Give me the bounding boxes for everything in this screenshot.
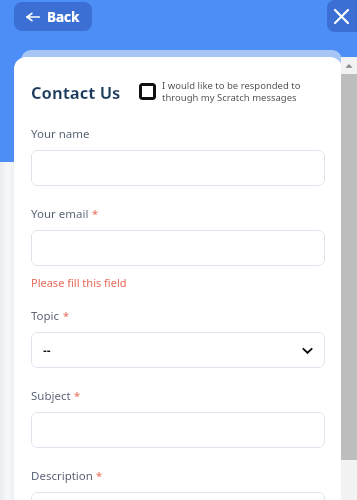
- button[interactable]: [31, 492, 325, 500]
- staticText: *: [63, 308, 70, 323]
- button[interactable]: Respond via Scratch messages: [139, 79, 301, 104]
- staticText: Please fill this field: [31, 275, 127, 290]
- staticText: I would like to be responded to through …: [162, 79, 301, 104]
- staticText: *: [92, 206, 99, 221]
- button[interactable]: Close: [327, 0, 357, 32]
- button[interactable]: [31, 230, 325, 266]
- other: Respond via Scratch messages: [139, 83, 156, 100]
- staticText: Your name: [31, 126, 90, 142]
- staticText: Subject: [31, 388, 71, 404]
- staticText: *: [74, 388, 81, 403]
- staticText: --: [43, 342, 51, 358]
- staticText: Contact Us: [31, 81, 121, 103]
- staticText: *: [96, 468, 103, 483]
- button[interactable]: [31, 412, 325, 448]
- staticText: Your email: [31, 206, 89, 222]
- staticText: Topic: [31, 308, 60, 324]
- staticText: Back: [47, 8, 80, 26]
- button[interactable]: [31, 150, 325, 186]
- button[interactable]: Back: [14, 2, 92, 31]
- staticText: Description: [31, 468, 93, 484]
- button[interactable]: --: [31, 332, 325, 368]
